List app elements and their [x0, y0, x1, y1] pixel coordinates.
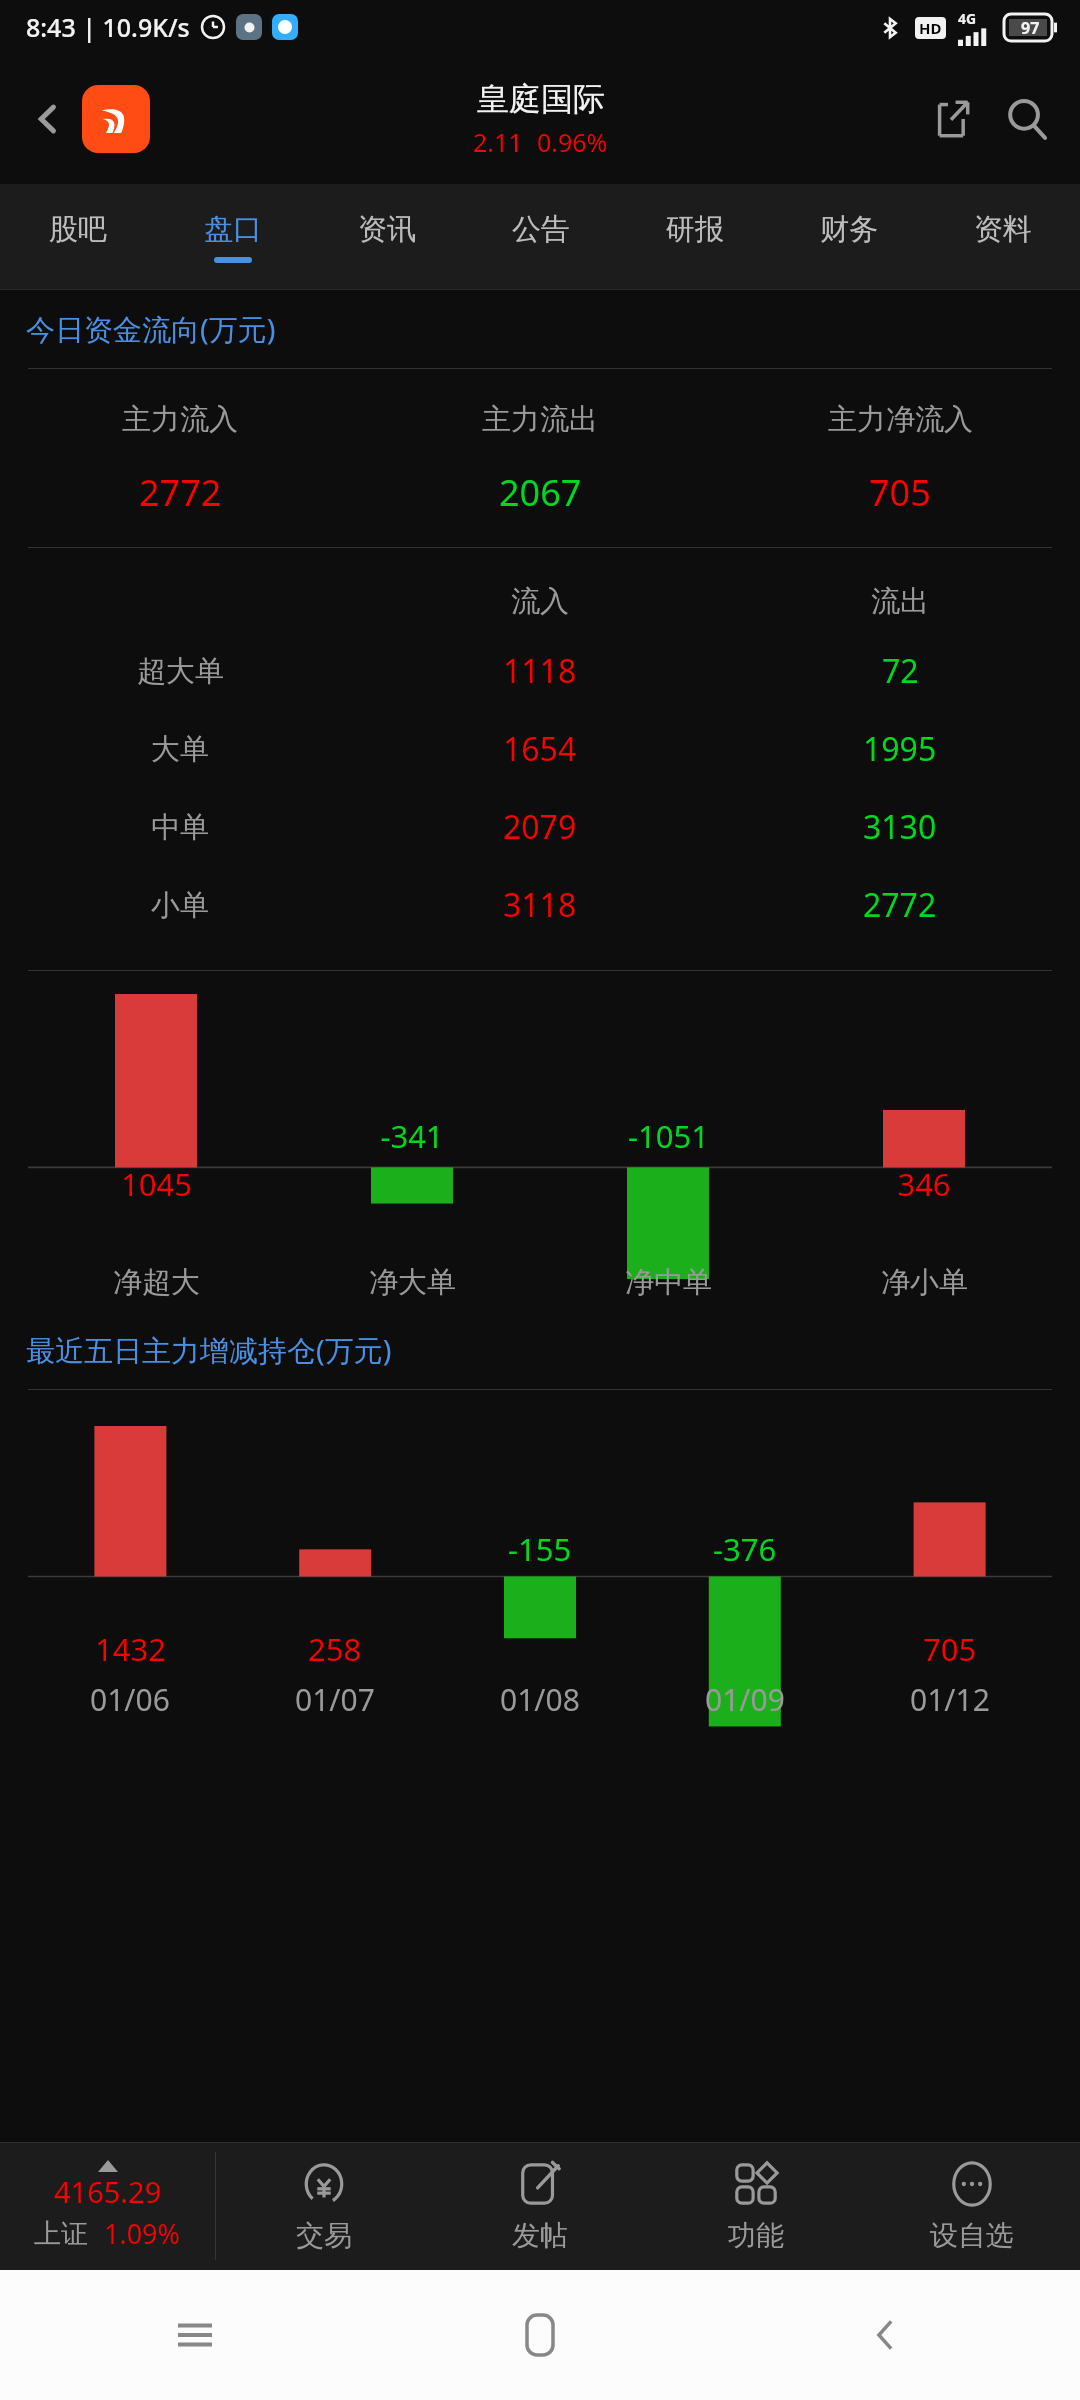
button[interactable]: 财务 [772, 184, 926, 290]
staticText: 流入 [511, 583, 569, 620]
staticText: 流出 [871, 583, 929, 620]
staticText: 705 [923, 1628, 977, 1670]
staticText: 净小单 [881, 1264, 968, 1301]
button[interactable]: 交易 [216, 2142, 432, 2270]
staticText: 交易 [296, 2218, 352, 2253]
staticText: 研报 [666, 211, 724, 248]
staticText: 01/08 [500, 1679, 580, 1720]
staticText: 大单 [151, 731, 209, 768]
staticText: 超大单 [137, 653, 224, 690]
staticText: 01/06 [90, 1679, 170, 1720]
button[interactable]: Back [840, 2290, 930, 2380]
button[interactable]: 设自选 [864, 2142, 1080, 2270]
button[interactable]: 盘口 [155, 184, 310, 290]
button[interactable]: 公告 [464, 184, 618, 290]
staticText: 2067 [499, 468, 582, 517]
staticText: 346 [897, 1163, 951, 1205]
staticText: 发帖 [512, 2218, 568, 2253]
staticText: 01/07 [295, 1679, 375, 1720]
staticText: 皇庭国际 [477, 79, 605, 119]
staticText: 258 [308, 1628, 362, 1670]
button[interactable]: Home [495, 2290, 585, 2380]
staticText: 中单 [151, 809, 209, 846]
staticText: 4G [958, 9, 977, 28]
button[interactable]: 资料 [926, 184, 1080, 290]
staticText: HD [919, 18, 942, 38]
staticText: 2079 [503, 805, 577, 849]
staticText: 1654 [503, 727, 577, 771]
staticText: 3118 [503, 883, 577, 927]
staticText: 财务 [820, 211, 878, 248]
button[interactable]: Share [920, 88, 982, 150]
staticText: 1118 [503, 649, 577, 693]
staticText: 1.09% [104, 2215, 181, 2252]
staticText: 0.96% [537, 125, 608, 159]
button[interactable]: 股吧 [0, 184, 155, 290]
button[interactable]: 资讯 [310, 184, 464, 290]
button[interactable]: Search [996, 88, 1058, 150]
staticText: 97 [1021, 17, 1040, 39]
staticText: 净中单 [625, 1264, 712, 1301]
staticText: 净超大 [113, 1264, 200, 1301]
staticText: -1051 [628, 1115, 709, 1157]
staticText: 01/12 [910, 1679, 990, 1720]
staticText: 主力流入 [122, 401, 238, 438]
staticText: 资料 [974, 211, 1032, 248]
button[interactable]: Recent apps [150, 2290, 240, 2380]
staticText: 盘口 [204, 211, 262, 248]
button[interactable]: 研报 [618, 184, 772, 290]
button[interactable]: 4165.29 [0, 2142, 215, 2270]
button[interactable]: Back [22, 93, 74, 145]
staticText: -341 [380, 1115, 444, 1157]
button[interactable]: 功能 [648, 2142, 864, 2270]
staticText: 2772 [863, 883, 937, 927]
staticText: 主力净流入 [828, 401, 973, 438]
staticText: 01/09 [705, 1679, 785, 1720]
staticText: 72 [882, 649, 919, 693]
staticText: -376 [713, 1528, 777, 1570]
staticText: 1995 [863, 727, 937, 771]
staticText: 705 [869, 468, 931, 517]
staticText: 资讯 [358, 211, 416, 248]
staticText: 最近五日主力增减持仓(万元) [26, 1330, 392, 1370]
staticText: 4165.29 [54, 2172, 162, 2211]
staticText: 小单 [151, 887, 209, 924]
staticText: 净大单 [369, 1264, 456, 1301]
staticText: -155 [508, 1528, 572, 1570]
staticText: 今日资金流向(万元) [26, 309, 276, 349]
staticText: 主力流出 [482, 401, 598, 438]
staticText: 2.11 [473, 125, 523, 159]
button[interactable]: 发帖 [432, 2142, 648, 2270]
staticText: 1432 [95, 1628, 166, 1670]
staticText: 8:43 | 10.9K/s [26, 10, 190, 44]
staticText: 设自选 [930, 2218, 1014, 2253]
staticText: 3130 [863, 805, 937, 849]
staticText: 公告 [512, 211, 570, 248]
staticText: 功能 [728, 2218, 784, 2253]
staticText: 2772 [139, 468, 222, 517]
staticText: 股吧 [49, 211, 107, 248]
staticText: 1045 [121, 1163, 192, 1205]
staticText: 上证 [34, 2217, 88, 2251]
button[interactable]: App logo [82, 85, 150, 153]
